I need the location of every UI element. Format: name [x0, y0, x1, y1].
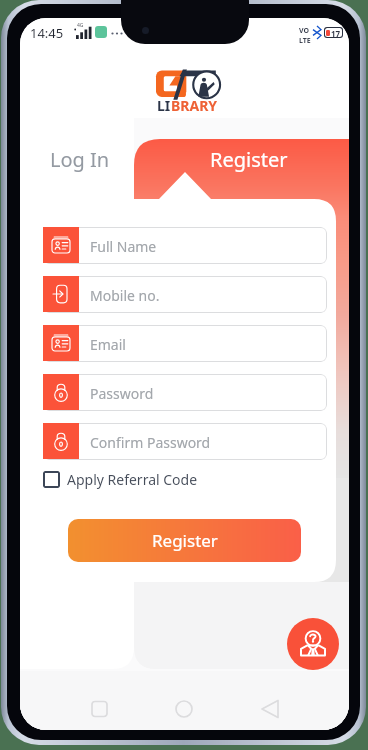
- staticText: 14:45: [30, 24, 64, 42]
- button[interactable]: Log In: [24, 136, 134, 196]
- staticText: LI: [157, 96, 171, 115]
- button[interactable]: Register: [68, 519, 301, 562]
- button[interactable]: Mobile no.: [43, 276, 327, 313]
- staticText: Register: [210, 146, 288, 173]
- button[interactable]: Password: [43, 374, 327, 411]
- staticText: Mobile no.: [90, 286, 160, 305]
- button[interactable]: Full Name: [43, 227, 327, 264]
- button[interactable]: Email: [43, 325, 327, 362]
- staticText: Email: [90, 335, 126, 354]
- staticText: BRARY: [171, 96, 218, 115]
- button[interactable]: Confirm Password: [43, 423, 327, 460]
- button[interactable]: Help and support: [287, 618, 339, 670]
- staticText: Register: [152, 529, 218, 552]
- button[interactable]: Recent apps: [20, 671, 130, 730]
- staticText: Log In: [50, 146, 110, 173]
- staticText: VO: [299, 26, 310, 36]
- button[interactable]: Register: [134, 136, 348, 196]
- staticText: LTE: [299, 36, 311, 46]
- staticText: Apply Referral Code: [67, 470, 198, 489]
- staticText: Password: [90, 384, 154, 403]
- button[interactable]: Back: [238, 671, 348, 730]
- staticText: 17: [331, 28, 341, 37]
- staticText: Confirm Password: [90, 433, 211, 452]
- staticText: Full Name: [90, 237, 157, 256]
- button[interactable]: Apply Referral Code: [43, 470, 198, 489]
- staticText: 4G: [77, 22, 84, 29]
